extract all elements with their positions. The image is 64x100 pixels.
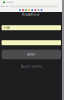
staticText: Esqueci a senha xyxy=(20,65,41,68)
staticText: email xyxy=(3,26,10,29)
staticText: Entrar xyxy=(27,53,35,56)
button[interactable]: Esqueci a senha xyxy=(0,65,62,68)
button[interactable]: Entrar xyxy=(2,50,61,59)
staticText: Redefinir xyxy=(22,11,40,17)
